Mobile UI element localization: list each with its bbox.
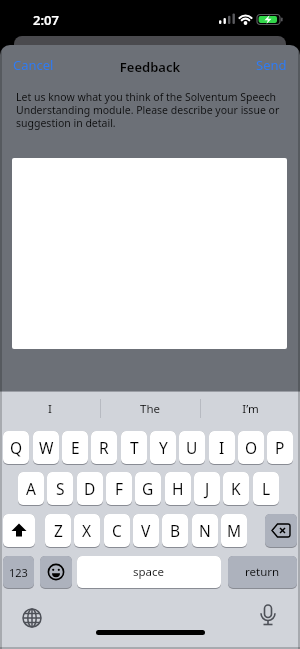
staticText: Q bbox=[10, 437, 23, 458]
staticText: J bbox=[205, 478, 210, 499]
staticText: O bbox=[245, 437, 258, 458]
button[interactable]: O bbox=[238, 431, 264, 464]
button[interactable]: Cancel bbox=[10, 55, 70, 75]
button[interactable]: 123 bbox=[3, 556, 34, 588]
staticText: Send bbox=[256, 56, 287, 74]
button[interactable]: Z bbox=[45, 514, 71, 547]
button[interactable]: R bbox=[91, 431, 117, 464]
button[interactable]: space bbox=[77, 556, 221, 588]
button[interactable] bbox=[250, 598, 286, 634]
button[interactable]: Y bbox=[150, 431, 176, 464]
staticText: L bbox=[262, 478, 271, 499]
staticText: K bbox=[231, 478, 241, 499]
button[interactable]: Send bbox=[240, 55, 295, 75]
staticText: W bbox=[39, 437, 54, 458]
staticText: D bbox=[84, 478, 96, 499]
staticText: T bbox=[130, 437, 139, 458]
staticText: B bbox=[170, 520, 181, 541]
staticText: Feedback bbox=[0, 58, 300, 76]
staticText: H bbox=[172, 478, 184, 499]
button[interactable]: I bbox=[209, 431, 235, 464]
staticText: U bbox=[186, 437, 198, 458]
staticText: M bbox=[227, 520, 242, 541]
button[interactable] bbox=[3, 514, 35, 547]
staticText: F bbox=[115, 478, 124, 499]
button[interactable]: L bbox=[253, 472, 279, 505]
staticText: Let us know what you think of the Solven… bbox=[16, 90, 276, 104]
button[interactable]: Q bbox=[3, 431, 29, 464]
staticText: I’m bbox=[242, 401, 259, 417]
staticText: space bbox=[133, 564, 165, 580]
button[interactable]: P bbox=[267, 431, 293, 464]
button[interactable]: H bbox=[165, 472, 191, 505]
staticText: R bbox=[99, 437, 109, 458]
button[interactable]: M bbox=[221, 514, 247, 547]
button[interactable]: W bbox=[33, 431, 59, 464]
staticText: E bbox=[71, 437, 80, 458]
staticText: C bbox=[112, 520, 122, 541]
button[interactable] bbox=[14, 600, 50, 636]
button[interactable]: T bbox=[121, 431, 147, 464]
staticText: I bbox=[219, 437, 225, 458]
staticText: V bbox=[141, 520, 151, 541]
staticText: P bbox=[275, 437, 285, 458]
button[interactable]: C bbox=[104, 514, 130, 547]
staticText: suggestion in detail. bbox=[16, 116, 116, 130]
button[interactable]: F bbox=[106, 472, 132, 505]
staticText: N bbox=[199, 520, 211, 541]
staticText: Y bbox=[159, 437, 168, 458]
button[interactable]: I bbox=[0, 398, 100, 420]
button[interactable]: I’m bbox=[200, 398, 300, 420]
staticText: I bbox=[48, 401, 52, 417]
staticText: G bbox=[142, 478, 154, 499]
staticText: 2:07 bbox=[33, 11, 59, 29]
button[interactable]: N bbox=[192, 514, 218, 547]
button[interactable]: G bbox=[135, 472, 161, 505]
button[interactable]: return bbox=[228, 556, 297, 588]
staticText: The bbox=[140, 401, 160, 417]
staticText: X bbox=[82, 520, 92, 541]
button[interactable]: K bbox=[223, 472, 249, 505]
button[interactable]: A bbox=[18, 472, 44, 505]
button[interactable] bbox=[265, 514, 297, 547]
staticText: Cancel bbox=[13, 56, 54, 74]
button[interactable]: The bbox=[100, 398, 200, 420]
button[interactable]: J bbox=[194, 472, 220, 505]
button[interactable]: U bbox=[179, 431, 205, 464]
button[interactable]: D bbox=[77, 472, 103, 505]
button[interactable]: S bbox=[47, 472, 73, 505]
button[interactable]: B bbox=[162, 514, 188, 547]
staticText: A bbox=[26, 478, 36, 499]
button[interactable]: X bbox=[74, 514, 100, 547]
button[interactable] bbox=[40, 556, 72, 588]
staticText: Z bbox=[54, 520, 63, 541]
button[interactable]: E bbox=[62, 431, 88, 464]
staticText: Understanding module. Please describe yo… bbox=[16, 103, 280, 117]
staticText: 123 bbox=[9, 565, 28, 580]
button[interactable]: V bbox=[133, 514, 159, 547]
staticText: S bbox=[56, 478, 65, 499]
staticText: return bbox=[245, 564, 280, 580]
